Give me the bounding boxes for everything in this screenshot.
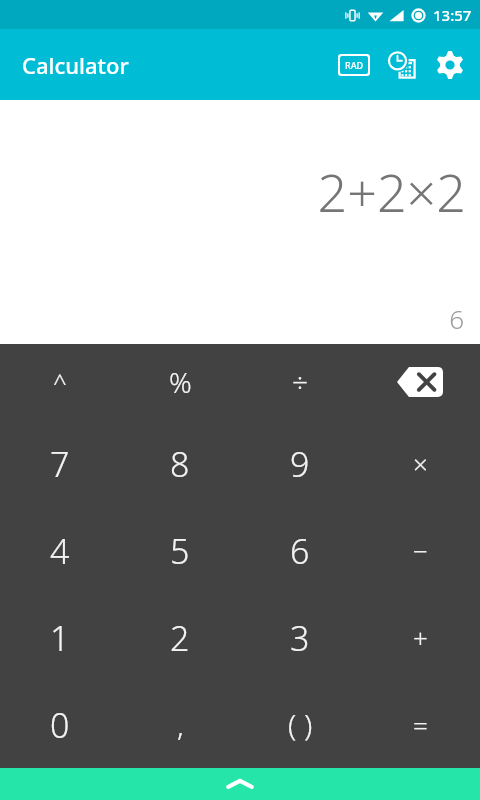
- staticText: −: [413, 533, 428, 568]
- staticText: 9: [290, 441, 310, 487]
- button[interactable]: 7: [0, 420, 120, 507]
- button[interactable]: 8: [120, 420, 240, 507]
- button[interactable]: =: [360, 681, 480, 768]
- staticText: +: [413, 620, 428, 655]
- button[interactable]: 6: [240, 507, 360, 594]
- button[interactable]: Angle unit RAD: [330, 41, 378, 89]
- button[interactable]: 4: [0, 507, 120, 594]
- button[interactable]: 9: [240, 420, 360, 507]
- staticText: 2+2×2: [317, 156, 466, 227]
- staticText: ,: [177, 704, 184, 745]
- button[interactable]: 2: [120, 594, 240, 681]
- button[interactable]: Settings: [426, 41, 474, 89]
- button[interactable]: Backspace: [360, 344, 480, 420]
- button[interactable]: ,: [120, 681, 240, 768]
- staticText: ×: [413, 446, 428, 481]
- button[interactable]: ÷: [240, 344, 360, 420]
- button[interactable]: 0: [0, 681, 120, 768]
- staticText: 6: [290, 528, 310, 574]
- staticText: 2: [170, 615, 190, 661]
- button[interactable]: %: [120, 344, 240, 420]
- button[interactable]: 3: [240, 594, 360, 681]
- staticText: ÷: [292, 363, 308, 401]
- staticText: 1: [50, 615, 70, 661]
- staticText: ^: [53, 366, 67, 399]
- button[interactable]: −: [360, 507, 480, 594]
- staticText: 8: [170, 441, 190, 487]
- staticText: 0: [50, 702, 70, 748]
- staticText: 5: [170, 528, 190, 574]
- staticText: 3: [290, 615, 310, 661]
- staticText: 4: [50, 528, 70, 574]
- staticText: ( ): [288, 704, 313, 745]
- staticText: 6: [449, 301, 464, 336]
- button[interactable]: ×: [360, 420, 480, 507]
- button[interactable]: ^: [0, 344, 120, 420]
- button[interactable]: 1: [0, 594, 120, 681]
- staticText: %: [169, 363, 192, 401]
- button[interactable]: History: [378, 41, 426, 89]
- button[interactable]: 5: [120, 507, 240, 594]
- staticText: Calculator: [22, 50, 129, 80]
- button[interactable]: ( ): [240, 681, 360, 768]
- staticText: 13:57: [433, 5, 472, 25]
- staticText: RAD: [345, 59, 364, 71]
- staticText: =: [413, 707, 428, 742]
- staticText: 7: [50, 441, 70, 487]
- button[interactable]: Expand panel: [0, 768, 480, 800]
- button[interactable]: +: [360, 594, 480, 681]
